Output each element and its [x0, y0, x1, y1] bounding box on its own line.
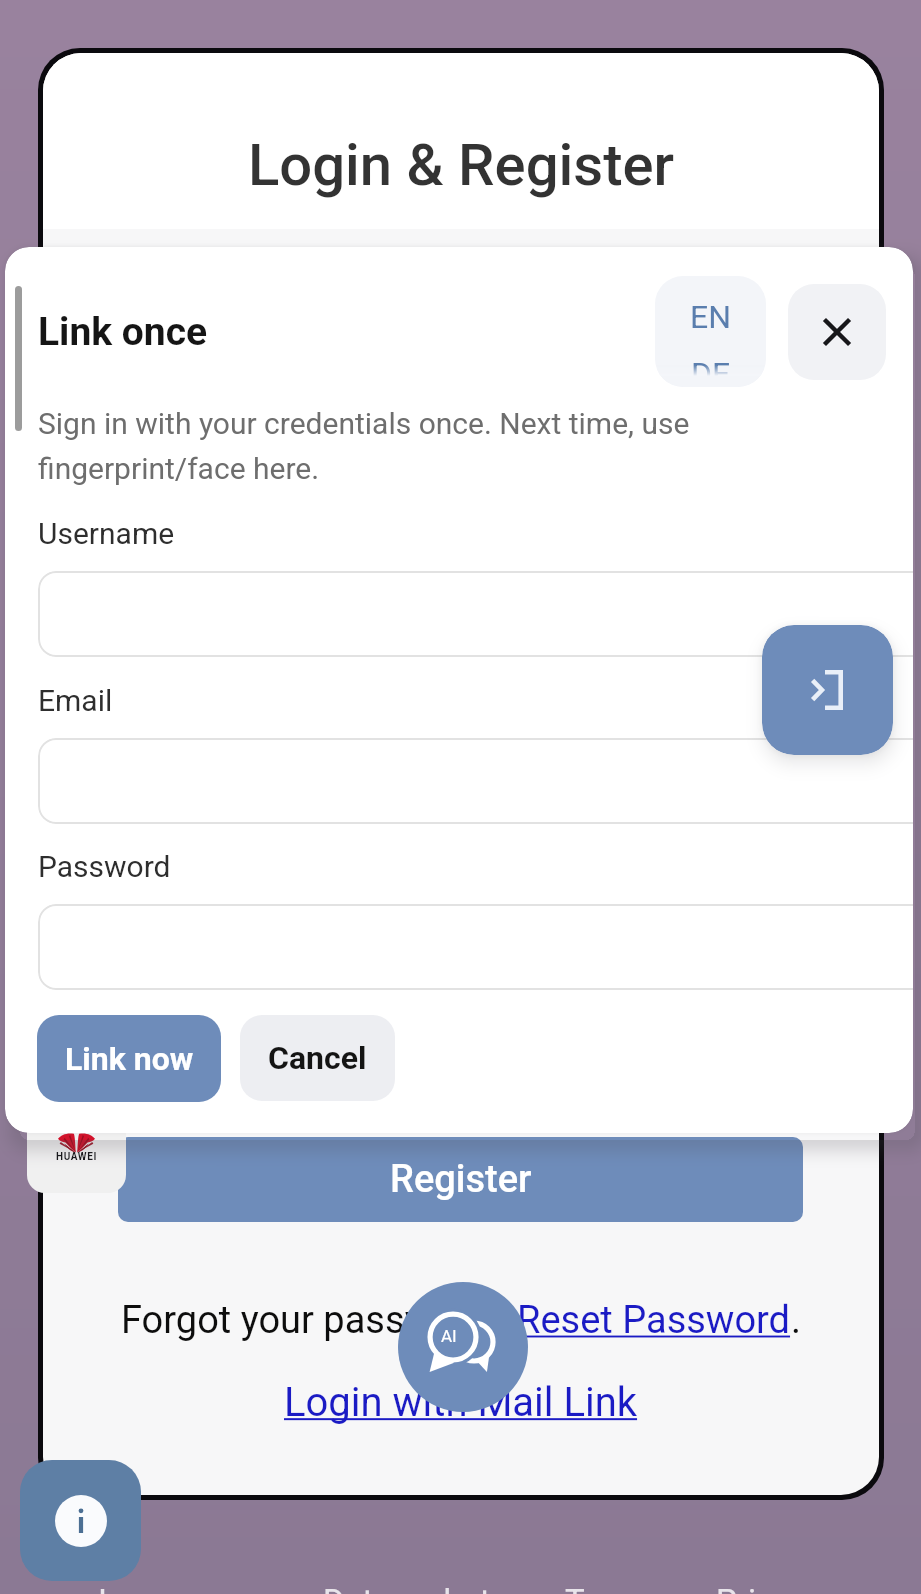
button[interactable]: Info	[20, 1460, 141, 1581]
button[interactable]: Datenschutz	[323, 1582, 507, 1594]
button[interactable]: EN	[655, 276, 766, 387]
staticText: Cancel	[268, 1039, 367, 1077]
staticText: Password	[38, 849, 171, 884]
staticText: AI	[441, 1326, 457, 1346]
staticText: EN	[655, 298, 766, 336]
staticText: Link now	[65, 1040, 194, 1078]
button[interactable]: Link now	[37, 1015, 221, 1102]
button[interactable]: Register	[118, 1137, 803, 1222]
button[interactable]: Reset Password	[517, 1298, 791, 1343]
staticText: Register	[390, 1157, 532, 1202]
button[interactable]	[38, 738, 913, 824]
button[interactable]: Impressum	[98, 1582, 265, 1594]
staticText: Link once	[38, 309, 208, 355]
staticText: .	[791, 1298, 802, 1343]
button[interactable]	[38, 904, 913, 990]
button[interactable]: Privacy	[716, 1582, 823, 1594]
button[interactable]: Login with Mail Link	[284, 1379, 638, 1426]
staticText: Email	[38, 683, 113, 718]
button[interactable]: Terms	[565, 1582, 658, 1594]
staticText: Login & Register	[43, 131, 879, 199]
button[interactable]: Cancel	[240, 1015, 395, 1101]
button[interactable]: Close	[788, 284, 886, 380]
staticText: Forgot your password?	[121, 1298, 517, 1343]
button[interactable]	[38, 571, 913, 657]
staticText: HUAWEI	[56, 1151, 97, 1163]
button[interactable]: AI assistant	[398, 1282, 528, 1412]
staticText: Sign in with your credentials once. Next…	[38, 406, 690, 486]
staticText: DE	[655, 355, 766, 387]
button[interactable]: Sign in	[762, 625, 893, 755]
staticText: Username	[38, 516, 175, 551]
